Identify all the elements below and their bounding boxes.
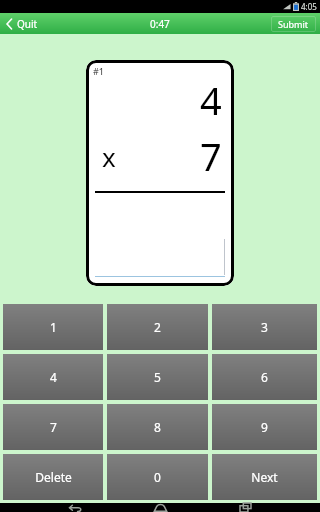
staticText: 9	[261, 419, 268, 435]
button[interactable]: 5	[107, 354, 208, 400]
button[interactable]: Delete	[3, 454, 103, 500]
button[interactable]: Back	[62, 503, 88, 512]
button[interactable]: 7	[3, 404, 103, 450]
button[interactable]: 2	[107, 304, 208, 350]
button[interactable]	[95, 237, 225, 277]
button[interactable]: Submit	[271, 16, 316, 32]
staticText: 0:47	[150, 17, 170, 31]
staticText: 6	[261, 369, 268, 385]
staticText: Submit	[278, 18, 309, 30]
staticText: 3	[261, 319, 268, 335]
button[interactable]: 3	[212, 304, 317, 350]
staticText: 0	[154, 469, 161, 485]
button[interactable]: 9	[212, 404, 317, 450]
button[interactable]: Quit	[0, 17, 46, 31]
button[interactable]: 0	[107, 454, 208, 500]
button[interactable]: 1	[3, 304, 103, 350]
staticText: 4:05	[301, 1, 317, 12]
staticText: x	[102, 139, 116, 174]
button[interactable]: 6	[212, 354, 317, 400]
staticText: Next	[251, 469, 278, 485]
staticText: 2	[154, 319, 161, 335]
staticText: 7	[50, 419, 57, 435]
button[interactable]: 4	[3, 354, 103, 400]
staticText: 4	[200, 74, 222, 126]
button[interactable]: Home	[147, 503, 173, 512]
button[interactable]: 8	[107, 404, 208, 450]
staticText: #1	[93, 65, 104, 77]
staticText: 5	[154, 369, 161, 385]
button[interactable]: Next	[212, 454, 317, 500]
button[interactable]: Recent apps	[232, 503, 258, 512]
staticText: Quit	[17, 17, 38, 31]
staticText: 7	[200, 130, 222, 182]
staticText: Delete	[35, 469, 72, 485]
staticText: 1	[50, 319, 57, 335]
staticText: 8	[154, 419, 161, 435]
staticText: 4	[50, 369, 57, 385]
